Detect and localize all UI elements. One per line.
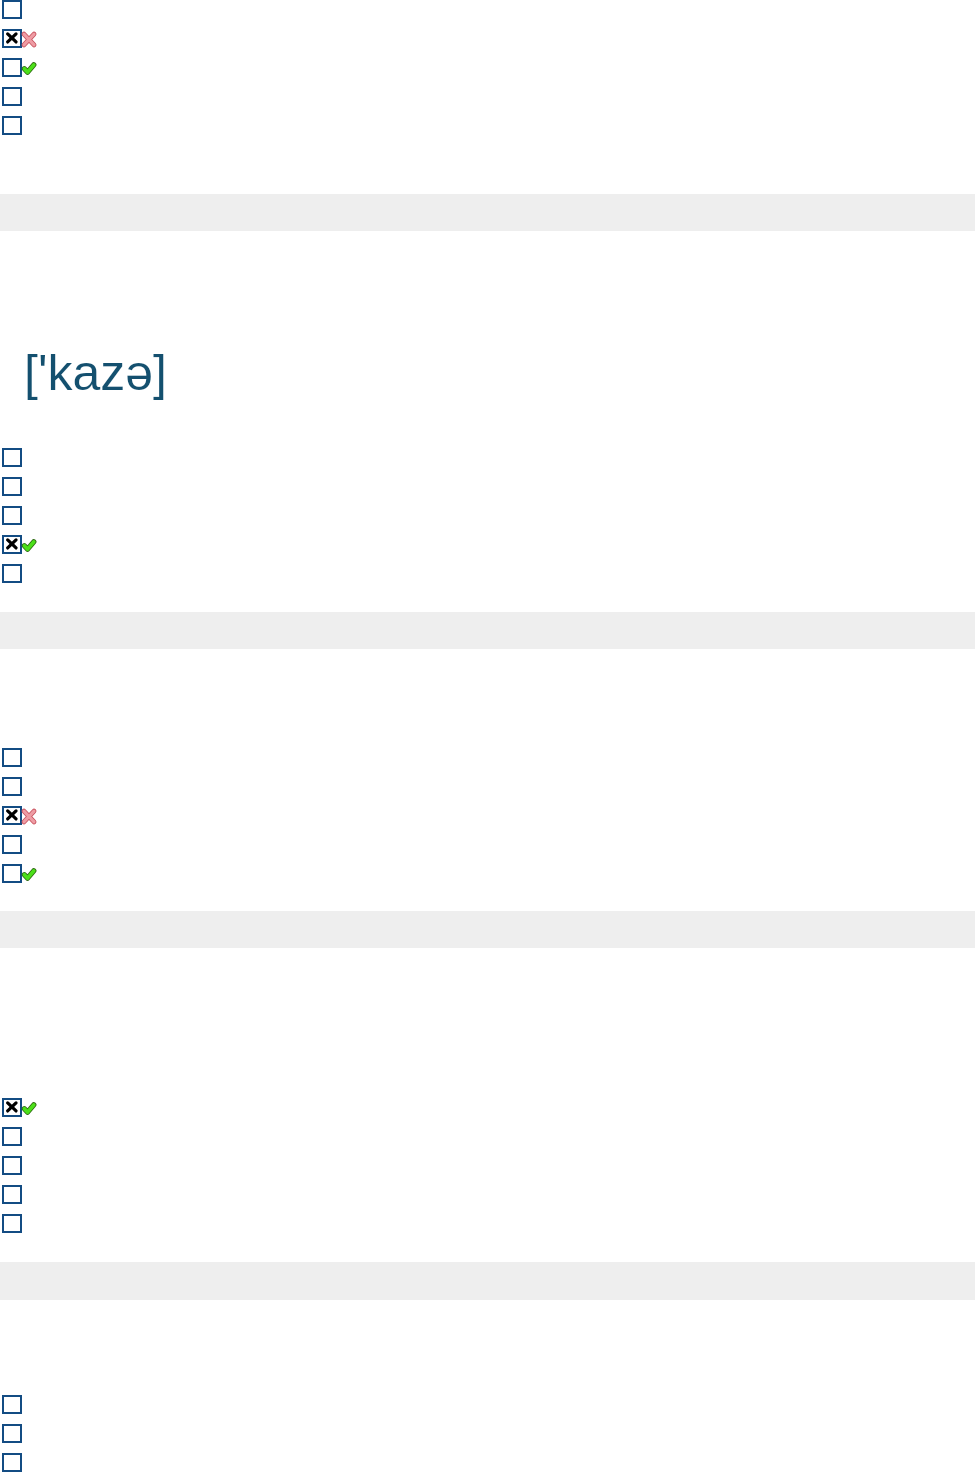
other: Answer option bbox=[2, 835, 22, 854]
other: Wrong answer bbox=[22, 809, 36, 824]
button[interactable]: Answer option bbox=[0, 864, 975, 893]
button[interactable]: Answer option bbox=[0, 564, 975, 593]
other: Selected answer bbox=[2, 535, 22, 554]
button[interactable]: Answer option bbox=[0, 1214, 975, 1243]
other: Answer option bbox=[2, 777, 22, 796]
button[interactable]: Answer option bbox=[0, 748, 975, 777]
button[interactable]: Answer option bbox=[0, 116, 975, 145]
button[interactable]: Answer option bbox=[0, 87, 975, 116]
other: Answer option bbox=[2, 477, 22, 496]
staticText: ['kazə] bbox=[24, 345, 167, 401]
button[interactable]: Selected answer bbox=[0, 806, 975, 835]
other: Answer option bbox=[2, 58, 22, 77]
other: Correct answer bbox=[22, 62, 36, 75]
other: Correct answer bbox=[22, 539, 36, 552]
other: Answer option bbox=[2, 1156, 22, 1175]
other: Answer option bbox=[2, 448, 22, 467]
other: Wrong answer bbox=[22, 32, 36, 47]
button[interactable]: Answer option bbox=[0, 1424, 975, 1453]
other: Answer option bbox=[2, 87, 22, 106]
other: Answer option bbox=[2, 1424, 22, 1443]
button[interactable]: Answer option bbox=[0, 1127, 975, 1156]
other: Selected answer bbox=[2, 1098, 22, 1117]
other: Answer option bbox=[2, 1127, 22, 1146]
other: Answer option bbox=[2, 1214, 22, 1233]
other: Correct answer bbox=[22, 1102, 36, 1115]
button[interactable]: Selected answer bbox=[0, 29, 975, 58]
other: Answer option bbox=[2, 864, 22, 883]
button[interactable]: Answer option bbox=[0, 835, 975, 864]
button[interactable]: Answer option bbox=[0, 777, 975, 806]
other: Correct answer bbox=[22, 868, 36, 881]
button[interactable]: Answer option bbox=[0, 58, 975, 87]
other: Answer option bbox=[2, 748, 22, 767]
other: Answer option bbox=[2, 1395, 22, 1414]
other: Answer option bbox=[2, 564, 22, 583]
other: Selected answer bbox=[2, 806, 22, 825]
other: Answer option bbox=[2, 0, 22, 19]
button[interactable]: Answer option bbox=[0, 1453, 975, 1472]
button[interactable]: Answer option bbox=[0, 1156, 975, 1185]
button[interactable]: Answer option bbox=[0, 1185, 975, 1214]
other: Answer option bbox=[2, 1453, 22, 1472]
button[interactable]: Answer option bbox=[0, 448, 975, 477]
other: Answer option bbox=[2, 116, 22, 135]
other: Selected answer bbox=[2, 29, 22, 48]
button[interactable]: Answer option bbox=[0, 1395, 975, 1424]
button[interactable]: Answer option bbox=[0, 477, 975, 506]
button[interactable]: Selected answer bbox=[0, 1098, 975, 1127]
other: Answer option bbox=[2, 1185, 22, 1204]
button[interactable]: Answer option bbox=[0, 506, 975, 535]
other: Answer option bbox=[2, 506, 22, 525]
button[interactable]: Answer option bbox=[0, 0, 975, 29]
button[interactable]: Selected answer bbox=[0, 535, 975, 564]
